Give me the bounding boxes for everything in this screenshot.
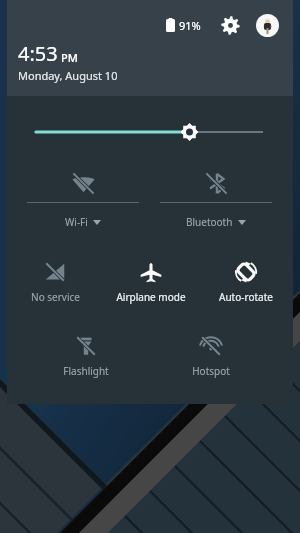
button[interactable]: Auto-rotate	[198, 255, 293, 309]
button[interactable]: No service	[7, 255, 103, 309]
button[interactable]: Brightness	[7, 114, 293, 150]
staticText: 91%	[179, 18, 201, 33]
staticText: Hotspot	[192, 364, 230, 378]
staticText: Auto-rotate	[219, 290, 273, 304]
staticText: No service	[31, 290, 80, 304]
staticText: Wi-Fi	[65, 215, 88, 229]
button[interactable]: Hotspot	[148, 329, 274, 383]
button[interactable]: Settings	[217, 12, 243, 38]
button[interactable]: Bluetooth	[160, 164, 272, 234]
button[interactable]: Flashlight	[23, 329, 149, 383]
button[interactable]: User profile	[256, 14, 279, 37]
staticText: Airplane mode	[116, 290, 186, 304]
staticText: Flashlight	[63, 364, 109, 378]
staticText: Bluetooth	[186, 215, 233, 229]
button[interactable]: Airplane mode	[103, 255, 198, 309]
staticText: 4:53	[18, 40, 58, 67]
staticText: Monday, August 10	[18, 68, 118, 83]
staticText: PM	[61, 50, 78, 65]
button[interactable]: Wi-Fi	[27, 164, 139, 234]
